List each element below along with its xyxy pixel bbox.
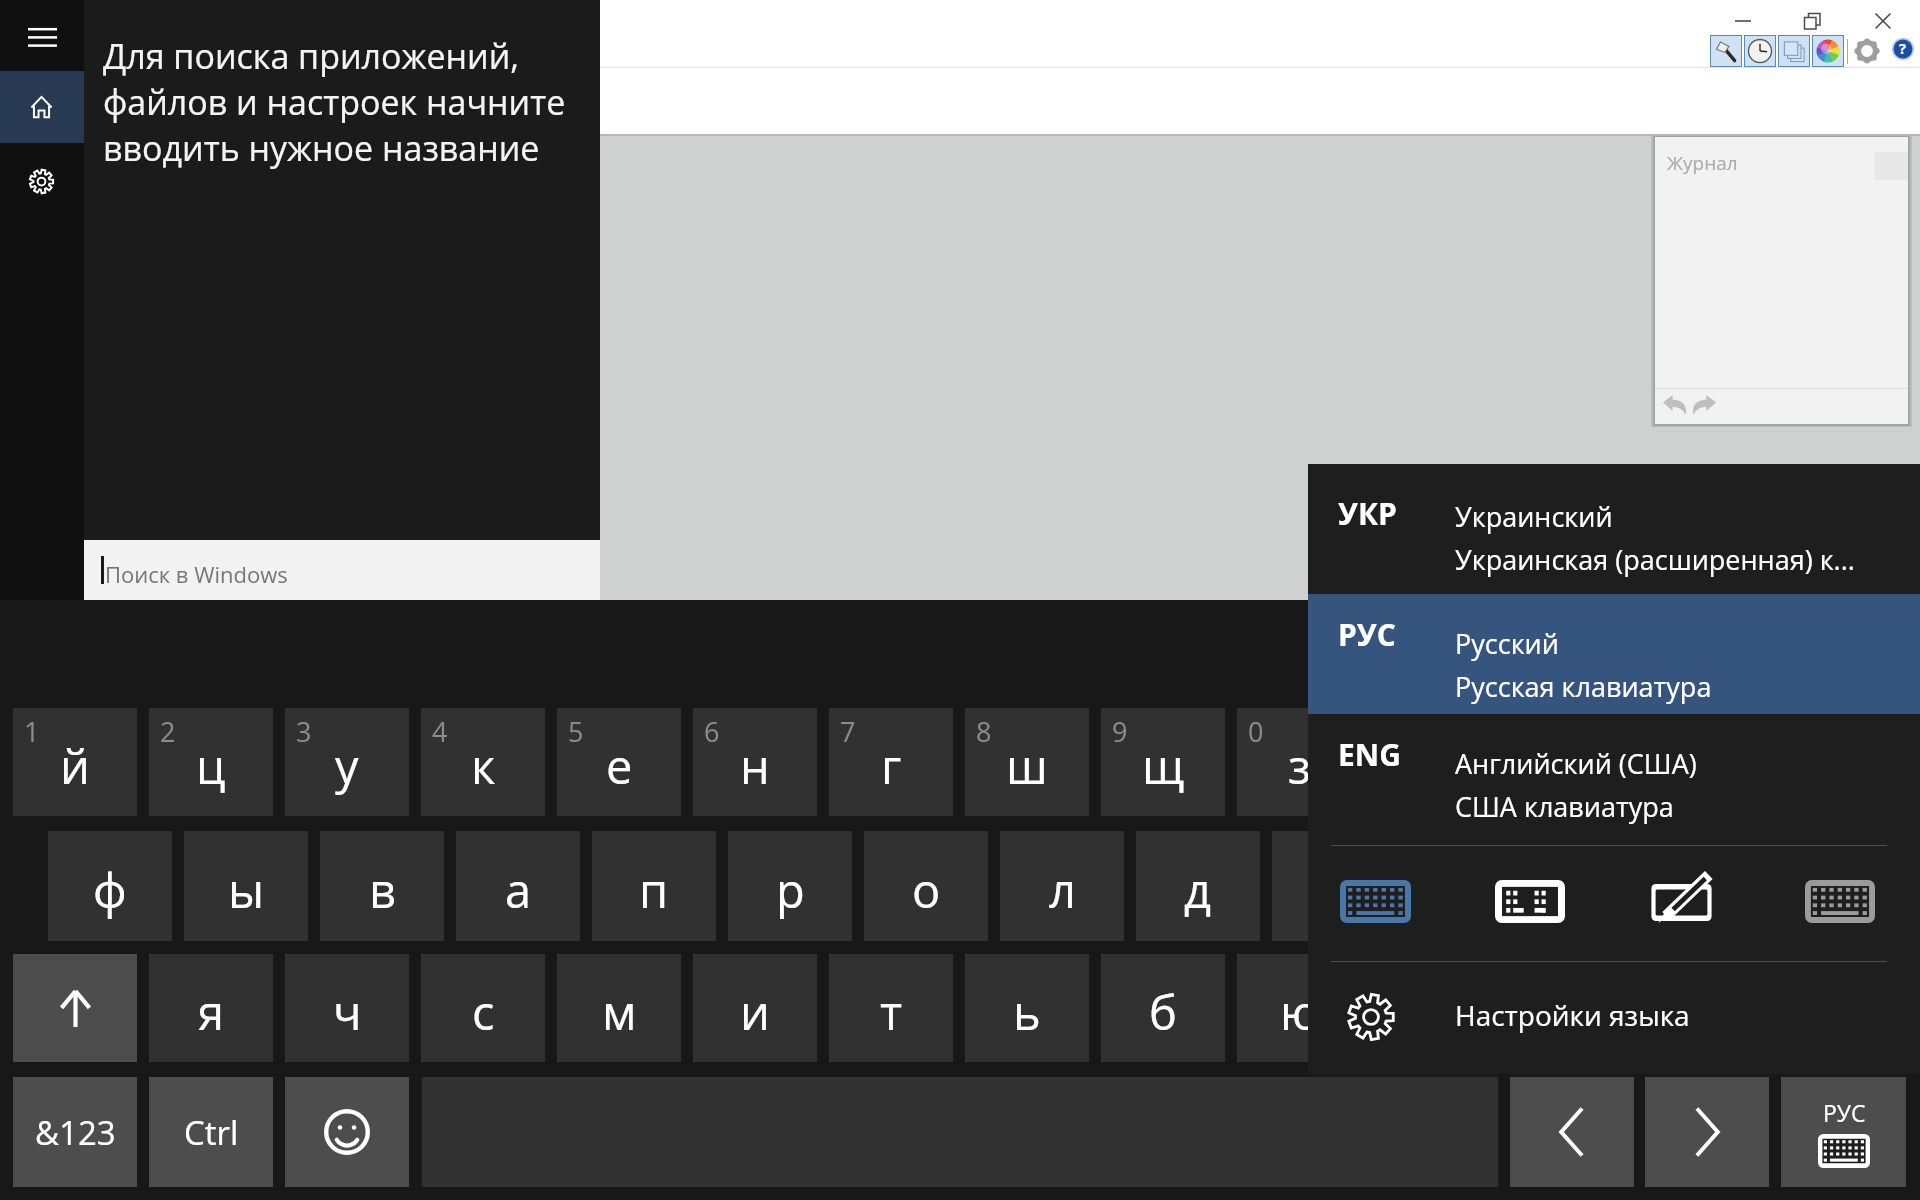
staticText: д bbox=[1184, 858, 1212, 922]
button[interactable]: Touch keyboard bbox=[1340, 880, 1411, 923]
button[interactable]: ы bbox=[184, 831, 308, 941]
button[interactable]: и bbox=[693, 954, 817, 1062]
button[interactable]: к bbox=[421, 708, 545, 816]
button[interactable]: Tools bbox=[1711, 36, 1741, 66]
staticText: РУС bbox=[1338, 614, 1396, 655]
button[interactable]: Поиск в Windows bbox=[84, 540, 600, 600]
button[interactable]: п bbox=[592, 831, 716, 941]
button[interactable]: РУС Русский bbox=[1308, 594, 1920, 714]
button[interactable]: Undo bbox=[1663, 395, 1687, 415]
staticText: 2 bbox=[160, 713, 176, 750]
button[interactable]: Standard keyboard bbox=[1805, 880, 1875, 923]
button[interactable]: м bbox=[557, 954, 681, 1062]
staticText: 7 bbox=[840, 713, 856, 750]
button[interactable]: л bbox=[1000, 831, 1124, 941]
staticText: Поиск в Windows bbox=[105, 559, 288, 589]
button[interactable]: Layers bbox=[1779, 36, 1809, 66]
button[interactable]: я bbox=[149, 954, 273, 1062]
button[interactable]: Previous bbox=[1510, 1077, 1634, 1187]
button[interactable]: е bbox=[557, 708, 681, 816]
button[interactable]: Language settings bbox=[1308, 962, 1920, 1074]
button[interactable]: р bbox=[728, 831, 852, 941]
button[interactable]: д bbox=[1136, 831, 1260, 941]
button[interactable]: Menu bbox=[0, 8, 84, 66]
button[interactable]: Next bbox=[1645, 1077, 1769, 1187]
button[interactable]: х bbox=[1373, 708, 1497, 816]
staticText: р bbox=[776, 858, 805, 922]
button[interactable]: э bbox=[1408, 831, 1532, 941]
button[interactable]: Handwriting bbox=[1650, 873, 1720, 923]
staticText: в bbox=[369, 858, 396, 922]
staticText: 6 bbox=[704, 713, 720, 750]
staticText: й bbox=[60, 734, 90, 798]
staticText: б bbox=[1149, 980, 1177, 1044]
staticText: з bbox=[1288, 734, 1311, 798]
button[interactable]: б bbox=[1101, 954, 1225, 1062]
staticText: 1 bbox=[24, 713, 40, 750]
button[interactable]: ш bbox=[965, 708, 1089, 816]
button[interactable]: Shift bbox=[13, 954, 137, 1062]
staticText: 9 bbox=[1112, 713, 1128, 750]
button[interactable]: Minimise bbox=[1720, 6, 1766, 36]
button[interactable]: Restore bbox=[1789, 6, 1835, 36]
button[interactable]: Help bbox=[1892, 38, 1914, 60]
button[interactable]: у bbox=[285, 708, 409, 816]
button[interactable]: ю bbox=[1237, 954, 1361, 1062]
button[interactable]: щ bbox=[1101, 708, 1225, 816]
staticText: 8 bbox=[976, 713, 992, 750]
staticText: ч bbox=[333, 980, 362, 1044]
button[interactable]: т bbox=[829, 954, 953, 1062]
button[interactable]: а bbox=[456, 831, 580, 941]
staticText: 4 bbox=[432, 713, 448, 750]
button[interactable]: Ctrl bbox=[149, 1077, 273, 1187]
staticText: ENG bbox=[1338, 734, 1401, 775]
button[interactable]: History bbox=[1745, 36, 1775, 66]
button[interactable]: Split keyboard bbox=[1495, 880, 1565, 923]
button[interactable]: ъ bbox=[1509, 708, 1633, 816]
button[interactable]: ч bbox=[285, 954, 409, 1062]
button[interactable]: й bbox=[13, 708, 137, 816]
button[interactable]: УКР Украинский bbox=[1308, 464, 1920, 594]
button[interactable]: Home bbox=[0, 71, 84, 143]
button[interactable]: Redo bbox=[1692, 395, 1716, 415]
button[interactable]: з bbox=[1237, 708, 1361, 816]
staticText: ? bbox=[1899, 38, 1907, 58]
staticText: е bbox=[606, 734, 633, 798]
staticText: щ bbox=[1142, 734, 1185, 798]
button[interactable]: Change language bbox=[1781, 1077, 1906, 1187]
button[interactable]: ж bbox=[1272, 831, 1396, 941]
button[interactable]: ENG Английский (США) bbox=[1308, 714, 1920, 844]
button[interactable]: &123 bbox=[13, 1077, 137, 1187]
staticText: РУС bbox=[1823, 1097, 1866, 1128]
button[interactable]: Close bbox=[1860, 6, 1906, 36]
button[interactable]: н bbox=[693, 708, 817, 816]
staticText: УКР bbox=[1338, 493, 1397, 534]
button[interactable]: с bbox=[421, 954, 545, 1062]
staticText: ъ bbox=[1555, 734, 1588, 798]
button[interactable]: ь bbox=[965, 954, 1089, 1062]
button[interactable]: г bbox=[829, 708, 953, 816]
button[interactable]: ц bbox=[149, 708, 273, 816]
staticText: Украинский Украинская (расширенная) к... bbox=[1455, 498, 1855, 578]
staticText: Для поиска приложений, файлов и настроек… bbox=[103, 33, 566, 171]
staticText: 3 bbox=[296, 713, 312, 750]
staticText: Английский (США) США клавиатура bbox=[1455, 745, 1697, 825]
button[interactable]: в bbox=[320, 831, 444, 941]
staticText: &123 bbox=[35, 1110, 116, 1155]
staticText: я bbox=[198, 980, 225, 1044]
staticText: с bbox=[472, 980, 495, 1044]
staticText: а bbox=[505, 858, 532, 922]
staticText: о bbox=[912, 858, 941, 922]
staticText: Русский Русская клавиатура bbox=[1455, 625, 1712, 705]
button[interactable]: о bbox=[864, 831, 988, 941]
staticText: 0 bbox=[1248, 713, 1264, 750]
button[interactable]: Colours bbox=[1813, 36, 1843, 66]
button[interactable]: . bbox=[1373, 954, 1497, 1062]
button[interactable]: ф bbox=[48, 831, 172, 941]
button[interactable]: Settings bbox=[1855, 39, 1879, 63]
button[interactable]: Settings bbox=[0, 145, 84, 217]
button[interactable]: Emoji bbox=[285, 1077, 409, 1187]
